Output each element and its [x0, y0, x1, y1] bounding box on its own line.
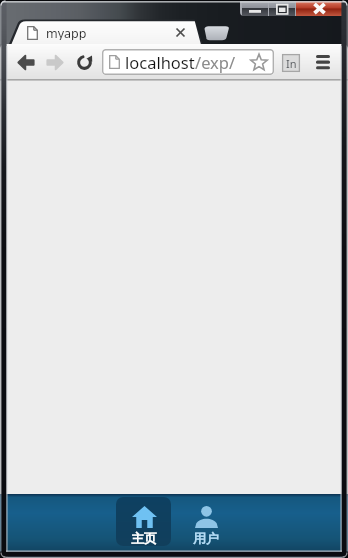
staticText: 用户 [193, 530, 219, 546]
button[interactable]: localhost [102, 49, 274, 75]
staticText: /exp/ [195, 51, 236, 73]
staticText: 主页 [131, 530, 157, 546]
button[interactable]: Menu [316, 55, 330, 70]
button[interactable]: Extension [282, 54, 300, 72]
button[interactable]: Back [18, 55, 34, 70]
button[interactable]: 用户 [178, 497, 233, 546]
staticText: myapp [46, 25, 87, 40]
button[interactable]: 主页 [116, 497, 171, 546]
staticText: localhost [125, 51, 195, 73]
button[interactable]: Maximize [269, 1, 295, 16]
button[interactable]: Bookmark [250, 53, 268, 71]
button[interactable]: Forward [47, 55, 63, 70]
button[interactable]: Close [296, 1, 343, 16]
button[interactable]: Close tab [174, 26, 187, 39]
button[interactable]: Reload [76, 54, 93, 71]
staticText: In [286, 56, 297, 71]
button[interactable]: Minimize [242, 1, 268, 16]
